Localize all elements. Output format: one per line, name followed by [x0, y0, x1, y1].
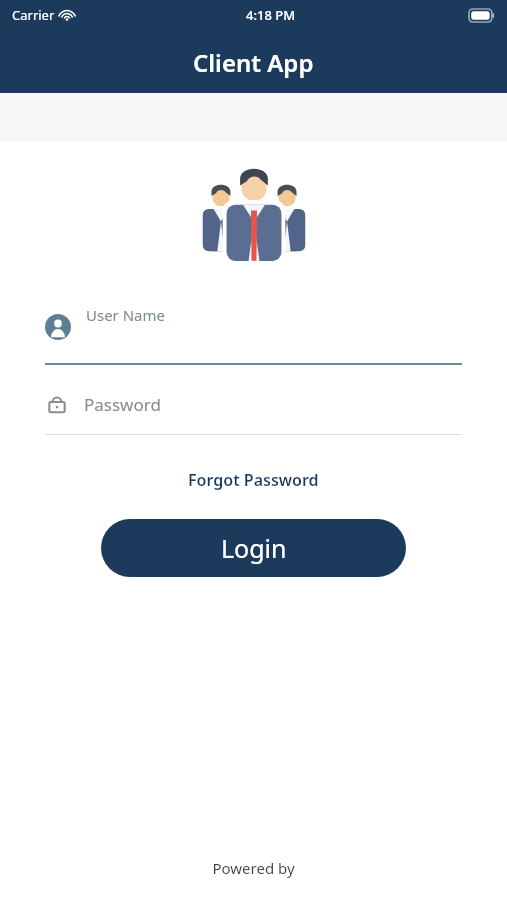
button[interactable]: Login [101, 519, 406, 577]
staticText: Password [84, 393, 161, 416]
staticText: 4:18 PM [246, 6, 296, 24]
staticText: Powered by [212, 858, 295, 878]
button[interactable]: Forgot Password [178, 465, 329, 495]
staticText: Forgot Password [188, 469, 319, 491]
staticText: Login [221, 531, 287, 565]
staticText: Client App [193, 46, 314, 79]
staticText: User Name [86, 305, 166, 325]
button[interactable]: User Name [45, 314, 462, 365]
staticText: Carrier [12, 6, 55, 24]
button[interactable]: Password [45, 392, 462, 435]
